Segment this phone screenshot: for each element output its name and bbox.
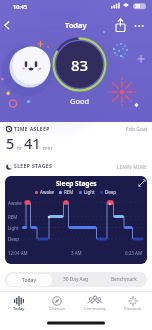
button[interactable] [131, 18, 147, 32]
button[interactable]: Today [7, 274, 52, 286]
staticText: 83 [71, 55, 89, 74]
staticText: 5 [6, 133, 15, 153]
button[interactable]: Premium [114, 291, 152, 317]
staticText: 30 [135, 3, 141, 9]
staticText: Sleep Stages [56, 179, 97, 188]
staticText: 10:45 [13, 3, 28, 10]
staticText: Community [84, 306, 106, 311]
staticText: Light [84, 189, 95, 195]
staticText: SLEEP STAGES [14, 163, 53, 170]
button[interactable]: Community [76, 291, 114, 317]
staticText: Edit Goal [126, 126, 148, 133]
button[interactable]: Today [0, 291, 38, 317]
staticText: 12:04 AM [8, 250, 28, 256]
button[interactable] [112, 17, 128, 33]
staticText: 41 [24, 133, 41, 153]
staticText: Awake [8, 200, 22, 206]
staticText: Premium [124, 306, 142, 311]
staticText: REM [8, 214, 18, 220]
button[interactable]: Discover [38, 291, 76, 317]
staticText: 30 Day Avg [63, 276, 89, 283]
staticText: TIME ASLEEP [14, 126, 50, 133]
button[interactable]: Sleep Stages [5, 176, 147, 264]
button[interactable]: 30 Day Avg [52, 272, 100, 287]
staticText: Today [13, 306, 25, 311]
staticText: 6:23 AM [125, 250, 143, 256]
staticText: Light [8, 225, 19, 231]
staticText: Deep [105, 189, 117, 195]
button[interactable]: Edit Goal [118, 124, 148, 134]
staticText: Today [65, 20, 87, 30]
staticText: Awake [40, 189, 54, 195]
button[interactable] [0, 16, 18, 34]
button[interactable]: LEARN MORE [112, 162, 148, 172]
staticText: Good [70, 96, 90, 106]
staticText: LEARN MORE [117, 164, 148, 170]
staticText: 3 AM [71, 250, 82, 256]
staticText: Today [22, 277, 37, 284]
staticText: REM [64, 189, 74, 195]
staticText: min [41, 144, 53, 151]
button[interactable]: Benchmark [100, 272, 147, 287]
staticText: Discover [49, 306, 66, 311]
staticText: Benchmark [111, 276, 137, 283]
staticText: Deep [8, 236, 20, 242]
staticText: hr [15, 144, 24, 151]
